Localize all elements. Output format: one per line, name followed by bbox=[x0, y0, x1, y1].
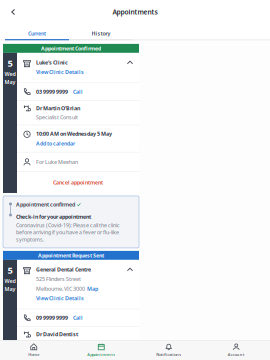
staticText: May bbox=[4, 78, 15, 85]
staticText: 5 bbox=[7, 57, 12, 69]
staticText: Cancel appointment bbox=[53, 179, 103, 186]
staticText: Appointments bbox=[112, 8, 157, 16]
staticText: Current bbox=[28, 30, 46, 37]
staticText: Dr David Dentist bbox=[36, 331, 78, 338]
button[interactable]: Back bbox=[0, 2, 23, 22]
staticText: 09 9999 9999 bbox=[36, 314, 68, 321]
staticText: View Clinic Details bbox=[36, 68, 84, 76]
staticText: Account bbox=[228, 352, 245, 357]
staticText: View Clinic Details bbox=[36, 295, 84, 302]
button[interactable]: Collapse bbox=[127, 59, 133, 65]
staticText: Call bbox=[73, 314, 83, 321]
staticText: Coronavirus (Covid-19): Please call the … bbox=[16, 222, 120, 243]
staticText: Appointment confirmed bbox=[16, 201, 75, 208]
button[interactable]: Call bbox=[73, 314, 83, 321]
button[interactable]: Notifications bbox=[135, 343, 202, 357]
staticText: General Dental Centre bbox=[36, 266, 91, 273]
staticText: Appointment Request Sent bbox=[38, 252, 104, 259]
staticText: 10:00 AM on Wednesday 5 May bbox=[36, 130, 112, 137]
staticText: 525 Flinders Street bbox=[36, 275, 81, 283]
staticText: Call bbox=[73, 88, 83, 95]
button[interactable]: Cancel appointment bbox=[17, 172, 139, 193]
button[interactable]: Map bbox=[87, 285, 98, 292]
staticText: Melbourne, VIC 3000 bbox=[36, 285, 85, 292]
button[interactable]: View Clinic Details bbox=[36, 295, 84, 302]
staticText: Luke's Clinic bbox=[36, 59, 68, 66]
staticText: May bbox=[4, 285, 15, 292]
staticText: Appointment Confirmed bbox=[41, 45, 101, 52]
staticText: Home bbox=[28, 352, 39, 357]
staticText: Check-in for your appointment bbox=[16, 213, 91, 220]
button[interactable]: Current bbox=[5, 30, 69, 40]
staticText: History bbox=[91, 30, 110, 37]
button[interactable]: Call bbox=[73, 88, 83, 95]
button[interactable]: Appointments bbox=[67, 343, 135, 357]
button[interactable]: Home bbox=[0, 343, 67, 357]
staticText: Add to calendar bbox=[36, 140, 75, 147]
staticText: 03 9999 9999 bbox=[36, 88, 68, 95]
staticText: Notifications bbox=[156, 352, 181, 357]
staticText: 5 bbox=[7, 264, 12, 276]
staticText: Wed bbox=[4, 70, 15, 77]
button[interactable]: Account bbox=[202, 343, 270, 357]
staticText: Map bbox=[87, 285, 98, 292]
button[interactable]: Add to calendar bbox=[36, 140, 75, 147]
button[interactable]: Collapse bbox=[127, 266, 133, 272]
staticText: For Luke Meehan bbox=[36, 158, 78, 165]
staticText: Dr Martin O'Brian bbox=[36, 105, 80, 112]
staticText: Specialist Consult bbox=[36, 114, 78, 121]
staticText: Wed bbox=[4, 277, 15, 284]
button[interactable]: View Clinic Details bbox=[36, 68, 84, 76]
button[interactable]: History bbox=[69, 30, 133, 40]
staticText: Appointments bbox=[87, 352, 115, 357]
